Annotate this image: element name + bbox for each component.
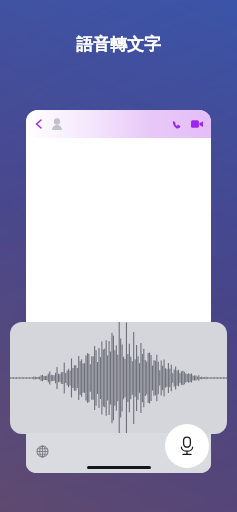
staticText: How are you? (55, 352, 100, 362)
staticText: 語音轉文字 (0, 34, 237, 55)
button[interactable]: Audio waveform (10, 322, 227, 434)
button[interactable]: Record voice (165, 424, 209, 468)
button[interactable]: Back (32, 117, 46, 131)
button[interactable]: How are you? (49, 349, 185, 364)
button[interactable]: Call (169, 116, 185, 132)
button[interactable]: Video call (189, 116, 205, 132)
button[interactable]: Language (34, 443, 50, 459)
